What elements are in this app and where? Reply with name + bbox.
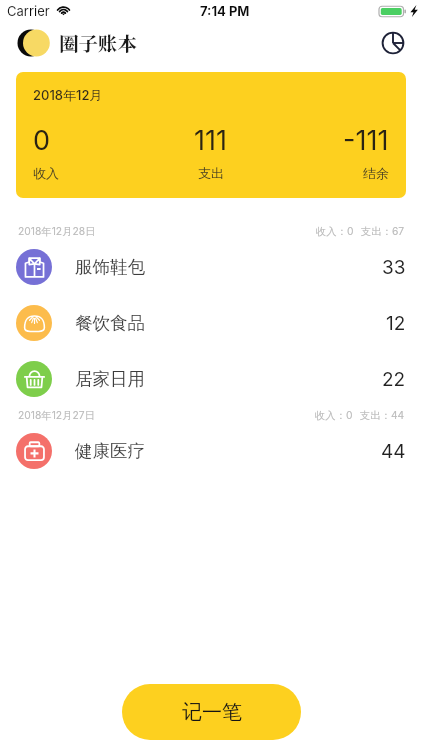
staticText: 支出：67 — [361, 225, 405, 238]
staticText: 0 — [33, 124, 51, 157]
staticText: 支出：44 — [360, 409, 405, 422]
staticText: 33 — [382, 256, 406, 279]
staticText: 2018年12月28日 — [18, 225, 96, 238]
staticText: Carrier — [7, 3, 50, 19]
button[interactable]: 居家日用 — [0, 351, 422, 407]
staticText: 44 — [381, 440, 406, 463]
staticText: 记一笔 — [182, 700, 242, 725]
staticText: 7:14 PM — [200, 3, 250, 19]
staticText: 收入：0 — [316, 225, 354, 238]
staticText: 111 — [194, 124, 227, 157]
staticText: 结余 — [363, 165, 389, 181]
staticText: 居家日用 — [75, 368, 145, 390]
staticText: 健康医疗 — [75, 440, 145, 462]
button[interactable]: 健康医疗 — [0, 423, 422, 479]
staticText: 收入 — [33, 165, 59, 181]
staticText: 圈子账本 — [59, 29, 138, 57]
staticText: 服饰鞋包 — [75, 256, 145, 278]
button[interactable]: 记一笔 — [122, 684, 301, 740]
staticText: -111 — [343, 124, 389, 157]
staticText: 支出 — [198, 165, 224, 181]
staticText: 收入：0 — [315, 409, 353, 422]
staticText: 12 — [386, 312, 406, 335]
staticText: 22 — [382, 368, 406, 391]
staticText: 餐饮食品 — [75, 312, 145, 334]
staticText: 2018年12月27日 — [18, 409, 95, 422]
staticText: 2018年12月 — [33, 87, 103, 103]
button[interactable]: 餐饮食品 — [0, 295, 422, 351]
button[interactable]: 服饰鞋包 — [0, 239, 422, 295]
button[interactable]: Statistics — [379, 29, 407, 57]
